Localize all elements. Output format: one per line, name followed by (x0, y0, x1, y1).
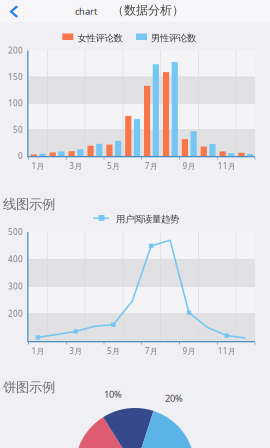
staticText: 300 (8, 281, 23, 292)
staticText: 1月 (31, 346, 44, 356)
staticText: 5月 (107, 161, 120, 171)
staticText: 饼图示例 (3, 379, 55, 395)
staticText: 0 (18, 151, 23, 161)
staticText: 20% (165, 392, 183, 404)
staticText: 5月 (107, 346, 120, 356)
staticText: 150 (8, 72, 23, 82)
staticText: 11月 (218, 161, 236, 171)
staticText: 10% (104, 388, 122, 400)
staticText: 3月 (69, 346, 82, 356)
staticText: 500 (8, 227, 23, 237)
staticText: 7月 (145, 161, 158, 171)
button[interactable]: Back (0, 0, 26, 22)
staticText: 用户阅读量趋势 (116, 213, 179, 225)
staticText: 200 (8, 45, 23, 56)
staticText: chart (75, 5, 97, 17)
staticText: 50 (13, 124, 23, 135)
staticText: 100 (8, 98, 23, 108)
staticText: （数据分析） (112, 3, 184, 18)
staticText: 11月 (218, 346, 236, 356)
staticText: 线图示例 (3, 196, 55, 212)
staticText: 7月 (145, 346, 158, 356)
staticText: 1月 (31, 161, 44, 171)
staticText: 9月 (182, 161, 195, 171)
staticText: 9月 (182, 346, 195, 356)
staticText: 200 (8, 308, 23, 319)
staticText: 3月 (69, 161, 82, 171)
staticText: 男性评论数 (151, 32, 196, 44)
staticText: 女性评论数 (77, 32, 122, 44)
staticText: 400 (8, 254, 23, 264)
